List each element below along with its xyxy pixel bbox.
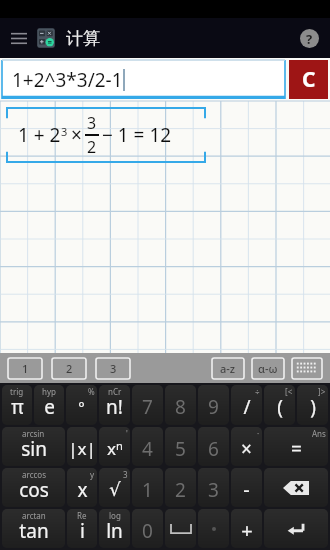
staticText: ÷ (255, 386, 260, 397)
staticText: 3 (208, 477, 219, 503)
button[interactable]: + (231, 509, 262, 548)
button[interactable]: % (66, 385, 97, 425)
button[interactable]: Ans (264, 427, 328, 466)
staticText: 1 (142, 477, 153, 503)
staticText: 3 (110, 361, 117, 376)
staticText: ? (306, 30, 313, 48)
button[interactable]: 6 (198, 427, 229, 466)
button[interactable]: 4 (132, 427, 163, 466)
button[interactable]: [< (264, 385, 295, 425)
button[interactable]: arctan (2, 509, 65, 548)
button[interactable]: nCr (99, 385, 130, 425)
button[interactable]: Space (165, 509, 196, 548)
staticText: 3 (123, 469, 128, 480)
staticText: 2 (175, 477, 186, 503)
button[interactable]: Enter (264, 509, 328, 548)
staticText: ]> (318, 386, 326, 397)
button[interactable]: ÷ (231, 385, 262, 425)
button[interactable]: 2 (52, 358, 86, 379)
staticText: arccos (22, 469, 46, 480)
button[interactable]: 9 (198, 385, 229, 425)
staticText: − 1 = 12 (102, 122, 172, 148)
staticText: arcsin (22, 428, 45, 439)
staticText: 8 (175, 394, 186, 420)
staticText: [< (285, 386, 293, 397)
staticText: ° (78, 397, 85, 417)
button[interactable]: C (289, 60, 328, 99)
button[interactable]: arcsin (2, 427, 65, 466)
button[interactable]: 1 (8, 358, 42, 379)
button[interactable]: α-ω (252, 358, 284, 379)
button[interactable]: 3 (198, 468, 229, 507)
button[interactable]: ]> (297, 385, 328, 425)
staticText: log (109, 510, 121, 521)
staticText: · (257, 428, 260, 439)
staticText: × (71, 122, 82, 148)
button[interactable]: 8 (165, 385, 196, 425)
button[interactable]: ' (99, 427, 130, 466)
staticText: / (243, 394, 251, 420)
button[interactable]: log (99, 509, 130, 548)
staticText: + (241, 517, 253, 544)
staticText: Ans (312, 428, 326, 439)
staticText: e (44, 394, 55, 420)
button[interactable]: - (231, 468, 262, 507)
button[interactable]: |x| (67, 427, 97, 466)
button[interactable]: arccos (2, 468, 65, 507)
button[interactable]: 1 + 2 (6, 107, 206, 163)
staticText: 4 (142, 436, 153, 462)
button[interactable]: Menu (6, 25, 32, 51)
staticText: α-ω (258, 361, 278, 376)
staticText: i (80, 518, 85, 544)
button[interactable]: Decimal point (198, 509, 229, 548)
button[interactable]: Hide keyboard (292, 358, 322, 379)
staticText: ) (310, 394, 316, 420)
button[interactable]: a-z (212, 358, 244, 379)
staticText: × (241, 436, 252, 462)
staticText: 5 (175, 436, 186, 462)
staticText: arctan (22, 510, 46, 521)
button[interactable]: y (67, 468, 97, 507)
staticText: C (302, 65, 316, 94)
staticText: a-z (220, 361, 236, 376)
staticText: √ (109, 479, 121, 500)
staticText: ln (106, 518, 123, 544)
button[interactable]: 1+2^3*3/2-1 (2, 60, 285, 99)
staticText: Re (77, 510, 87, 521)
staticText: % (88, 386, 95, 397)
staticText: 6 (208, 436, 219, 462)
button[interactable]: trig (2, 385, 32, 425)
button[interactable]: 2 (165, 468, 196, 507)
staticText: ' (126, 428, 128, 439)
staticText: nCr (108, 386, 122, 397)
button[interactable]: 7 (132, 385, 163, 425)
staticText: x (77, 477, 88, 503)
staticText: 计算 (66, 28, 100, 49)
staticText: 2 (66, 361, 73, 376)
button[interactable]: 1 (132, 468, 163, 507)
button[interactable]: Help (294, 23, 324, 53)
button[interactable]: 5 (165, 427, 196, 466)
staticText: 9 (208, 394, 219, 420)
staticText: 1+2^3*3/2-1 (12, 67, 123, 93)
button[interactable]: hyp (34, 385, 64, 425)
staticText: 7 (142, 394, 153, 420)
staticText: π (11, 394, 24, 420)
staticText: 3 (87, 112, 97, 134)
staticText: y (90, 469, 95, 480)
button[interactable]: Backspace (264, 468, 328, 507)
staticText: - (243, 476, 250, 503)
staticText: |x| (68, 437, 96, 460)
staticText: cos (19, 477, 49, 503)
staticText: 0 (142, 518, 153, 544)
staticText: 1 (22, 361, 29, 376)
staticText: = (291, 436, 302, 462)
button[interactable]: 3 (96, 358, 130, 379)
staticText: 3 (61, 124, 68, 139)
button[interactable]: Re (67, 509, 97, 548)
button[interactable]: 3 (99, 468, 130, 507)
staticText: xⁿ (107, 437, 123, 460)
button[interactable]: · (231, 427, 262, 466)
button[interactable]: 0 (132, 509, 163, 548)
staticText: hyp (42, 386, 56, 397)
